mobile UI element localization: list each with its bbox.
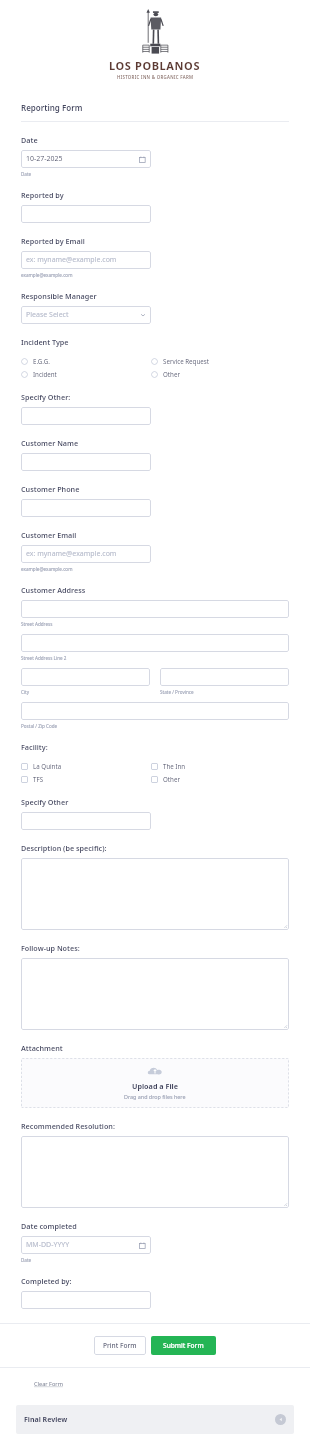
staticText: Date bbox=[21, 135, 38, 145]
button[interactable]: Print Form bbox=[94, 1336, 146, 1355]
staticText: Street Address Line 2 bbox=[21, 655, 67, 661]
button[interactable] bbox=[21, 858, 289, 930]
staticText: Submit Form bbox=[163, 1341, 204, 1350]
staticText: 10-27-2025 bbox=[26, 154, 63, 164]
staticText: State / Province bbox=[160, 689, 194, 695]
button[interactable]: La Quinta bbox=[21, 761, 62, 771]
staticText: Customer Name bbox=[21, 438, 79, 448]
button[interactable] bbox=[21, 499, 151, 517]
button[interactable] bbox=[21, 1136, 289, 1208]
button[interactable] bbox=[21, 958, 289, 1030]
button[interactable] bbox=[21, 407, 151, 425]
button[interactable]: Submit Form bbox=[151, 1336, 216, 1355]
staticText: City bbox=[21, 689, 30, 695]
staticText: example@example.com bbox=[21, 566, 73, 572]
button[interactable]: Other bbox=[151, 774, 180, 784]
staticText: Specify Other: bbox=[21, 392, 71, 402]
staticText: Drag and drop files here bbox=[124, 1093, 186, 1100]
button[interactable] bbox=[160, 668, 289, 686]
button[interactable] bbox=[21, 634, 289, 652]
staticText: Street Address bbox=[21, 621, 53, 627]
staticText: Reported by bbox=[21, 190, 64, 200]
staticText: HISTORIC INN & ORGANIC FARM bbox=[117, 74, 194, 80]
button[interactable]: E.G.G. bbox=[21, 356, 50, 366]
staticText: Service Request bbox=[163, 357, 209, 365]
button[interactable]: Final Review bbox=[16, 1405, 294, 1434]
staticText: Follow-up Notes: bbox=[21, 943, 80, 953]
button[interactable] bbox=[21, 812, 151, 830]
button[interactable]: MM-DD-YYYY bbox=[21, 1236, 151, 1254]
staticText: Please Select bbox=[26, 310, 69, 320]
staticText: Description (be specific): bbox=[21, 843, 107, 853]
staticText: MM-DD-YYYY bbox=[26, 1240, 70, 1250]
staticText: Date completed bbox=[21, 1221, 77, 1231]
staticText: Final Review bbox=[24, 1415, 68, 1425]
staticText: Recommended Resolution: bbox=[21, 1121, 115, 1131]
staticText: La Quinta bbox=[33, 762, 62, 770]
staticText: Incident bbox=[33, 370, 57, 378]
staticText: Date bbox=[21, 1257, 32, 1263]
staticText: Upload a File bbox=[132, 1081, 179, 1091]
button[interactable] bbox=[21, 668, 150, 686]
button[interactable]: Please Select bbox=[21, 306, 151, 324]
button[interactable] bbox=[21, 1291, 151, 1309]
button[interactable]: ex: myname@example.com bbox=[21, 251, 151, 269]
other: Collapse Final Review bbox=[275, 1414, 286, 1425]
button[interactable]: 10-27-2025 bbox=[21, 150, 151, 168]
button[interactable] bbox=[21, 600, 289, 618]
button[interactable]: Upload a File bbox=[21, 1058, 289, 1108]
staticText: Incident Type bbox=[21, 337, 69, 347]
staticText: Other bbox=[163, 775, 180, 783]
staticText: Other bbox=[163, 370, 180, 378]
button[interactable] bbox=[21, 453, 151, 471]
staticText: ex: myname@example.com bbox=[26, 549, 117, 559]
staticText: Specify Other bbox=[21, 797, 69, 807]
staticText: Attachment bbox=[21, 1043, 63, 1053]
button[interactable]: Clear Form bbox=[34, 1378, 63, 1390]
staticText: example@example.com bbox=[21, 272, 73, 278]
staticText: Completed by: bbox=[21, 1276, 72, 1286]
staticText: Customer Address bbox=[21, 585, 86, 595]
staticText: Postal / Zip Code bbox=[21, 723, 58, 729]
button[interactable]: Other bbox=[151, 369, 180, 379]
staticText: Reporting Form bbox=[21, 102, 83, 113]
staticText: The Inn bbox=[163, 762, 186, 770]
staticText: Reported by Email bbox=[21, 236, 85, 246]
staticText: TFS bbox=[33, 775, 44, 783]
button[interactable]: The Inn bbox=[151, 761, 186, 771]
staticText: E.G.G. bbox=[33, 357, 50, 365]
button[interactable]: Service Request bbox=[151, 356, 209, 366]
button[interactable] bbox=[21, 702, 289, 720]
staticText: Print Form bbox=[103, 1341, 137, 1350]
staticText: Responsible Manager bbox=[21, 291, 97, 301]
staticText: ex: myname@example.com bbox=[26, 255, 117, 265]
staticText: Customer Phone bbox=[21, 484, 80, 494]
staticText: LOS POBLANOS bbox=[109, 58, 201, 73]
button[interactable] bbox=[21, 205, 151, 223]
staticText: Date bbox=[21, 171, 32, 177]
button[interactable]: Incident bbox=[21, 369, 57, 379]
staticText: Customer Email bbox=[21, 530, 77, 540]
button[interactable]: TFS bbox=[21, 774, 44, 784]
button[interactable]: ex: myname@example.com bbox=[21, 545, 151, 563]
staticText: Facility: bbox=[21, 742, 48, 752]
